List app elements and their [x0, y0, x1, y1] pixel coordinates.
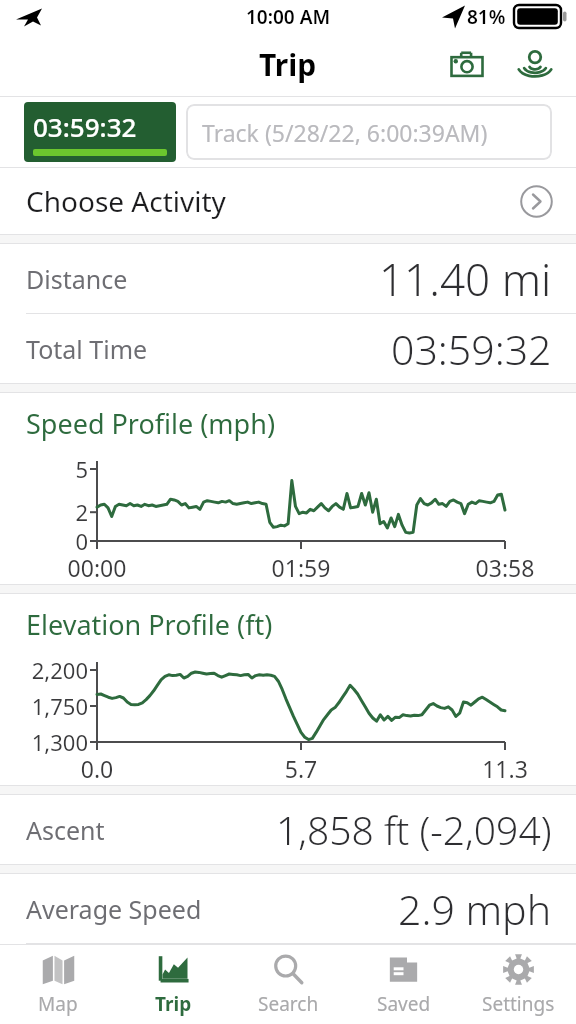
staticText: 1,300	[0, 727, 88, 757]
staticText: Elevation Profile (ft)	[26, 606, 273, 643]
staticText: 10:00 AM	[246, 4, 331, 30]
button[interactable]: Choose Activity	[0, 168, 576, 234]
staticText: Track (5/28/22, 6:00:39AM)	[202, 117, 488, 148]
staticText: 1,750	[0, 691, 88, 721]
button[interactable]: Ascent	[0, 795, 576, 864]
staticText: Trip	[155, 991, 192, 1017]
staticText: Average Speed	[26, 892, 202, 926]
staticText: Saved	[377, 991, 431, 1017]
staticText: 01:59	[221, 552, 381, 583]
button[interactable]: Distance	[0, 244, 576, 313]
staticText: 5.7	[221, 753, 381, 784]
staticText: Distance	[26, 262, 128, 296]
staticText: 5	[0, 454, 88, 484]
button[interactable]: 03:59:32	[24, 102, 176, 162]
staticText: 03:59:32	[33, 109, 137, 144]
staticText: 00:00	[17, 552, 177, 583]
staticText: 03:59:32	[391, 321, 552, 377]
staticText: Total Time	[26, 332, 148, 366]
button[interactable]: Saved	[346, 945, 461, 1024]
staticText: Choose Activity	[26, 182, 226, 220]
button[interactable]: Average Speed	[0, 874, 576, 943]
staticText: Settings	[482, 991, 555, 1017]
button[interactable]: Take photo	[440, 38, 494, 92]
staticText: 03:58	[425, 552, 576, 583]
button[interactable]: Search	[231, 945, 346, 1024]
staticText: Map	[38, 991, 78, 1017]
staticText: 2,200	[0, 655, 88, 685]
staticText: Speed Profile (mph)	[26, 405, 275, 442]
staticText: Search	[258, 991, 319, 1017]
staticText: 0.0	[17, 753, 177, 784]
button[interactable]: Total Time	[0, 314, 576, 383]
staticText: 0	[0, 526, 88, 556]
staticText: 81%	[467, 4, 506, 30]
button[interactable]: Settings	[461, 945, 576, 1024]
button[interactable]: Trip	[116, 945, 231, 1024]
staticText: Ascent	[26, 813, 105, 847]
staticText: 11.3	[425, 753, 576, 784]
staticText: Trip	[259, 44, 317, 85]
button[interactable]: Map	[0, 945, 116, 1024]
staticText: 2	[0, 497, 88, 527]
staticText: 1,858 ft (-2,094)	[276, 803, 552, 856]
button[interactable]: Track (5/28/22, 6:00:39AM)	[186, 104, 552, 160]
button[interactable]: Record track	[508, 38, 562, 92]
staticText: 11.40 mi	[379, 249, 552, 309]
staticText: 2.9 mph	[398, 881, 552, 937]
